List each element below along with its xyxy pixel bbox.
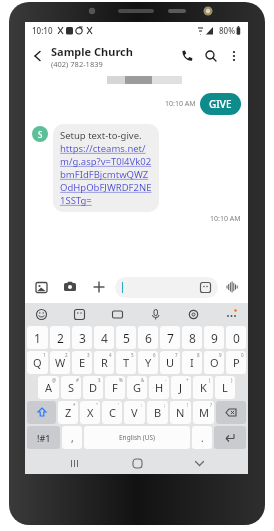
button[interactable]: 1 [27, 351, 48, 374]
button[interactable]: Call [175, 44, 199, 68]
staticText: C [109, 405, 116, 420]
button[interactable]: 0 [226, 351, 246, 374]
staticText: 4 [101, 330, 108, 346]
button[interactable]: : [124, 401, 145, 424]
button[interactable]: More options [223, 45, 245, 67]
button[interactable]: Search [199, 44, 223, 68]
staticText: 0 [233, 330, 240, 346]
button[interactable]: 5 [116, 351, 136, 374]
button[interactable]: 2 [50, 326, 70, 349]
staticText: : [141, 402, 143, 408]
button[interactable]: Sample Church [51, 44, 175, 69]
button[interactable]: , [62, 426, 82, 449]
button[interactable]: Recents [61, 452, 87, 474]
button[interactable]: $ [83, 376, 103, 399]
button[interactable]: Backspace [216, 401, 246, 424]
staticText: T [123, 355, 130, 370]
button[interactable]: GIF [111, 308, 124, 321]
staticText: 10:10 AM [165, 99, 196, 109]
staticText: # [76, 377, 79, 383]
button[interactable]: 9 [204, 351, 224, 374]
button[interactable]: ? [193, 401, 214, 424]
button[interactable]: Home [124, 452, 150, 474]
button[interactable]: % [105, 376, 125, 399]
button[interactable]: 4 [94, 351, 114, 374]
button[interactable]: ! [170, 401, 191, 424]
button[interactable]: !#1 [27, 426, 60, 449]
button[interactable]: ; [147, 401, 168, 424]
staticText: !#1 [37, 432, 51, 444]
staticText: H [155, 380, 164, 395]
button[interactable]: - [149, 376, 169, 399]
button[interactable] [115, 277, 218, 298]
button[interactable]: 7 [160, 326, 180, 349]
staticText: GIVE [209, 97, 232, 111]
button[interactable]: 4 [94, 326, 114, 349]
button[interactable]: 6 [138, 326, 158, 349]
button[interactable]: 9 [204, 326, 224, 349]
button[interactable]: Back [25, 43, 51, 69]
staticText: (402) 782-1839 [51, 59, 103, 69]
staticText: S [38, 129, 43, 140]
staticText: ; [164, 402, 166, 408]
button[interactable]: More [225, 308, 238, 321]
button[interactable]: * [58, 401, 78, 424]
staticText: ) [231, 377, 233, 383]
button[interactable]: ( [193, 376, 213, 399]
staticText: 8 [189, 330, 196, 346]
staticText: P [233, 355, 240, 370]
staticText: A [45, 380, 53, 395]
button[interactable]: 3 [72, 351, 92, 374]
button[interactable]: 6 [138, 351, 158, 374]
button[interactable]: 1 [27, 326, 48, 349]
button[interactable]: @ [38, 376, 59, 399]
staticText: Sample Church [51, 44, 133, 59]
staticText: X [87, 405, 94, 420]
button[interactable]: 0 [226, 326, 246, 349]
button[interactable]: Enter [214, 426, 246, 449]
button[interactable]: Stickers [73, 308, 86, 321]
staticText: Q [33, 355, 42, 370]
button[interactable]: 3 [72, 326, 92, 349]
button[interactable]: Voice input [149, 308, 162, 321]
button[interactable]: + [171, 376, 191, 399]
button[interactable]: Voice message [222, 277, 242, 297]
staticText: , [71, 431, 74, 445]
button[interactable]: Camera [60, 277, 80, 297]
staticText: 2 [65, 352, 68, 358]
staticText: https://cteams.net/m/g.asp?v=T0l4Vk02bmF… [60, 142, 152, 207]
staticText: B [154, 405, 162, 420]
button[interactable]: Setup text-to-give. [53, 124, 159, 212]
staticText: & [141, 377, 145, 383]
button[interactable]: # [61, 376, 81, 399]
button[interactable]: 7 [160, 351, 180, 374]
button[interactable]: " [80, 401, 100, 424]
button[interactable]: 5 [116, 326, 136, 349]
button[interactable]: 8 [182, 326, 202, 349]
button[interactable]: English (US) [84, 426, 190, 449]
staticText: 8 [197, 352, 200, 358]
staticText: ( [209, 377, 211, 383]
staticText: 2 [57, 330, 64, 346]
staticText: L [222, 380, 228, 395]
button[interactable]: ' [102, 401, 122, 424]
staticText: F [112, 380, 118, 395]
button[interactable]: & [127, 376, 147, 399]
button[interactable]: Settings [187, 308, 200, 321]
button[interactable]: Emoji [35, 308, 48, 321]
button[interactable]: 2 [50, 351, 70, 374]
staticText: W [55, 355, 66, 370]
button[interactable]: ) [215, 376, 235, 399]
button[interactable]: Gallery [31, 277, 51, 297]
button[interactable]: GIVE [200, 93, 241, 115]
staticText: 9 [219, 352, 222, 358]
staticText: O [210, 355, 219, 370]
button[interactable]: 8 [182, 351, 202, 374]
button[interactable]: Hide keyboard [186, 452, 212, 474]
staticText: . [201, 431, 204, 445]
staticText: 7 [167, 330, 174, 346]
button[interactable]: . [192, 426, 212, 449]
staticText: % [119, 377, 123, 383]
button[interactable]: Add attachment [89, 277, 109, 297]
button[interactable]: Shift [27, 401, 56, 424]
